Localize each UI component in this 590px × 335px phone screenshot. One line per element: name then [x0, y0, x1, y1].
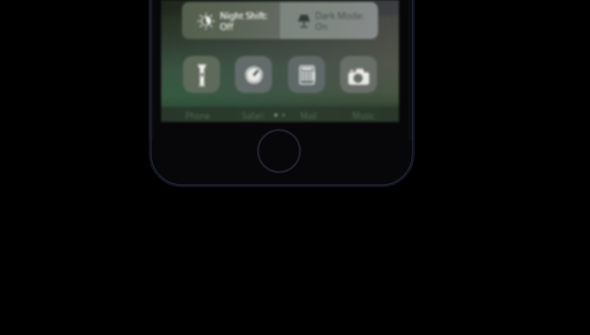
staticText: On: [315, 20, 328, 32]
button[interactable]: Calculator: [288, 56, 325, 93]
button[interactable]: Flashlight: [183, 56, 220, 93]
staticText: Mail: [300, 110, 317, 121]
button[interactable]: Camera: [340, 56, 377, 93]
staticText: Music: [352, 110, 375, 121]
button[interactable]: Safari: [237, 109, 269, 121]
button[interactable]: Music: [347, 109, 379, 121]
button[interactable]: Night Shift:: [182, 2, 280, 39]
staticText: Safari: [242, 110, 264, 121]
staticText: Dark Mode:: [315, 9, 365, 21]
button[interactable]: Phone: [181, 109, 213, 121]
button[interactable]: Timer: [235, 56, 272, 93]
button[interactable]: Dark Mode:: [280, 2, 378, 39]
staticText: Off: [220, 20, 234, 32]
staticText: Night Shift:: [220, 9, 268, 21]
staticText: Phone: [185, 110, 210, 121]
button[interactable]: Mail: [292, 109, 324, 121]
